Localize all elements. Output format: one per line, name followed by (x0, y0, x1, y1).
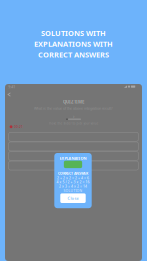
staticText: 2 + 2 x 2 = 2 + 4 = 6 (57, 175, 89, 180)
staticText: Close (67, 195, 78, 201)
staticText: What is the value of the above integrati… (34, 106, 113, 111)
staticText: SOLUTIONS WITH (41, 28, 106, 38)
staticText: EXPLANATIONS WITH (34, 39, 113, 49)
button[interactable] (64, 161, 82, 168)
staticText: 4 x 5 / 2 + 3 x 2 = 16 (56, 180, 89, 184)
button[interactable]: Close (60, 193, 86, 203)
staticText: EXPLANATION (59, 156, 86, 161)
button[interactable]: Back (7, 92, 11, 97)
staticText: CORRECT ANSWER (58, 171, 88, 176)
staticText: › (73, 113, 74, 120)
staticText: SOLUTION EXPLAINED (63, 188, 82, 198)
staticText: CORRECT ANSWERS (38, 49, 109, 60)
staticText: QUIZ TIME (63, 99, 84, 105)
staticText: 9:41 (8, 85, 15, 89)
staticText: 2 x 3 + 4 x 2 = 14 (59, 184, 87, 188)
staticText: 00:21 (14, 125, 23, 129)
